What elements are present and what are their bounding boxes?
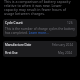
button[interactable]: First Use	[5, 49, 73, 57]
staticText: February 2024	[52, 43, 73, 47]
button[interactable]: Cycle Count	[3, 19, 77, 37]
staticText: Manufacture Date	[5, 43, 32, 47]
staticText: 126	[67, 21, 73, 25]
button[interactable]: Manufacture Date	[5, 41, 73, 49]
staticText: This is a comparison of battery capacity…	[4, 0, 76, 16]
staticText: First Use	[5, 51, 18, 55]
staticText: Cycle Count	[5, 21, 23, 25]
staticText: This is the number of charge cycles the …	[5, 27, 75, 35]
staticText: May 2024	[58, 51, 73, 55]
